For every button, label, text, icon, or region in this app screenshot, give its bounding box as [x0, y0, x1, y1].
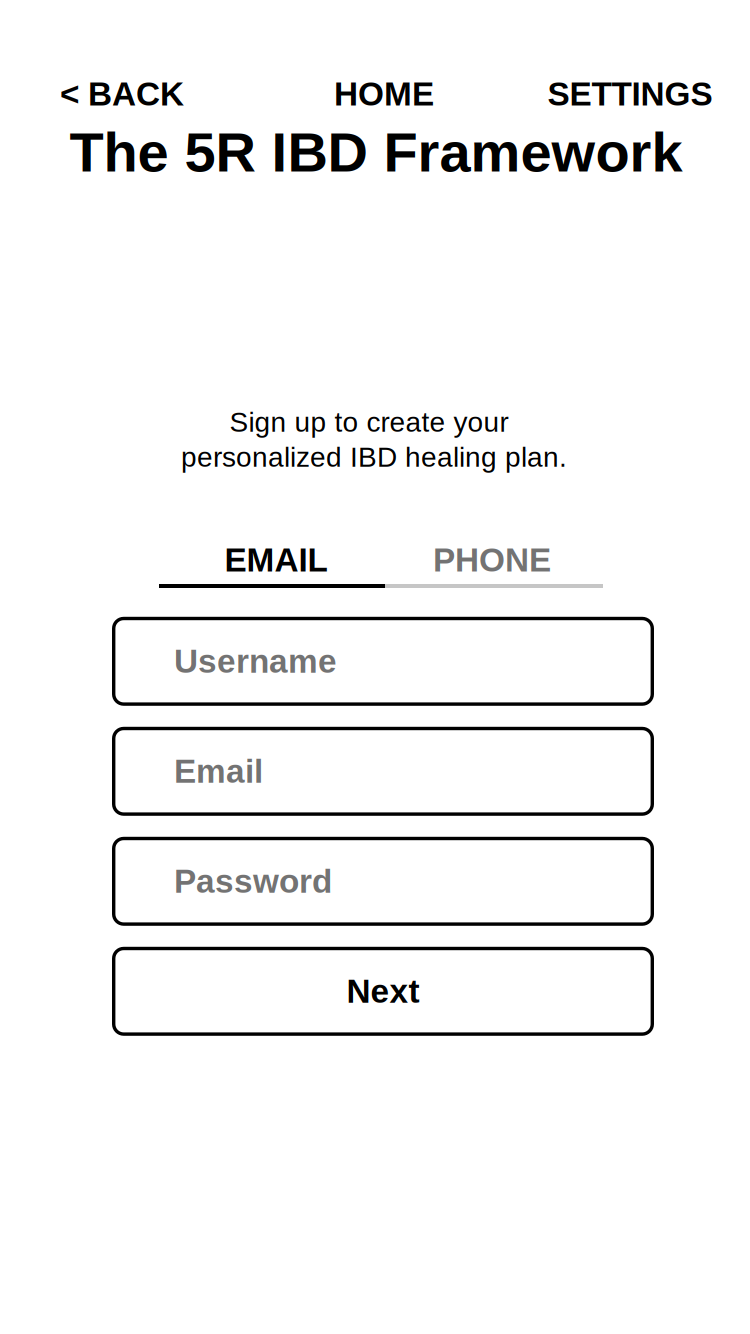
staticText: personalized IBD healing plan. [181, 441, 567, 473]
staticText: SETTINGS [547, 75, 712, 113]
button[interactable]: HOME [334, 72, 434, 116]
staticText: Next [346, 973, 419, 1010]
button[interactable]: Next [112, 947, 654, 1036]
button[interactable]: Username [112, 617, 654, 706]
button[interactable]: SETTINGS [547, 72, 712, 116]
button[interactable]: Email [112, 727, 654, 816]
staticText: HOME [334, 75, 434, 113]
staticText: EMAIL [224, 541, 327, 579]
staticText: PHONE [433, 541, 551, 579]
staticText: The 5R IBD Framework [69, 121, 682, 183]
button[interactable]: EMAIL [159, 538, 385, 588]
staticText: < BACK [60, 75, 184, 113]
button[interactable]: PHONE [385, 538, 603, 588]
staticText: Sign up to create your [229, 406, 508, 438]
staticText: Email [174, 753, 263, 790]
staticText: Username [174, 643, 337, 680]
button[interactable]: < BACK [60, 72, 184, 116]
staticText: Password [174, 863, 332, 900]
button[interactable]: Password [112, 837, 654, 926]
